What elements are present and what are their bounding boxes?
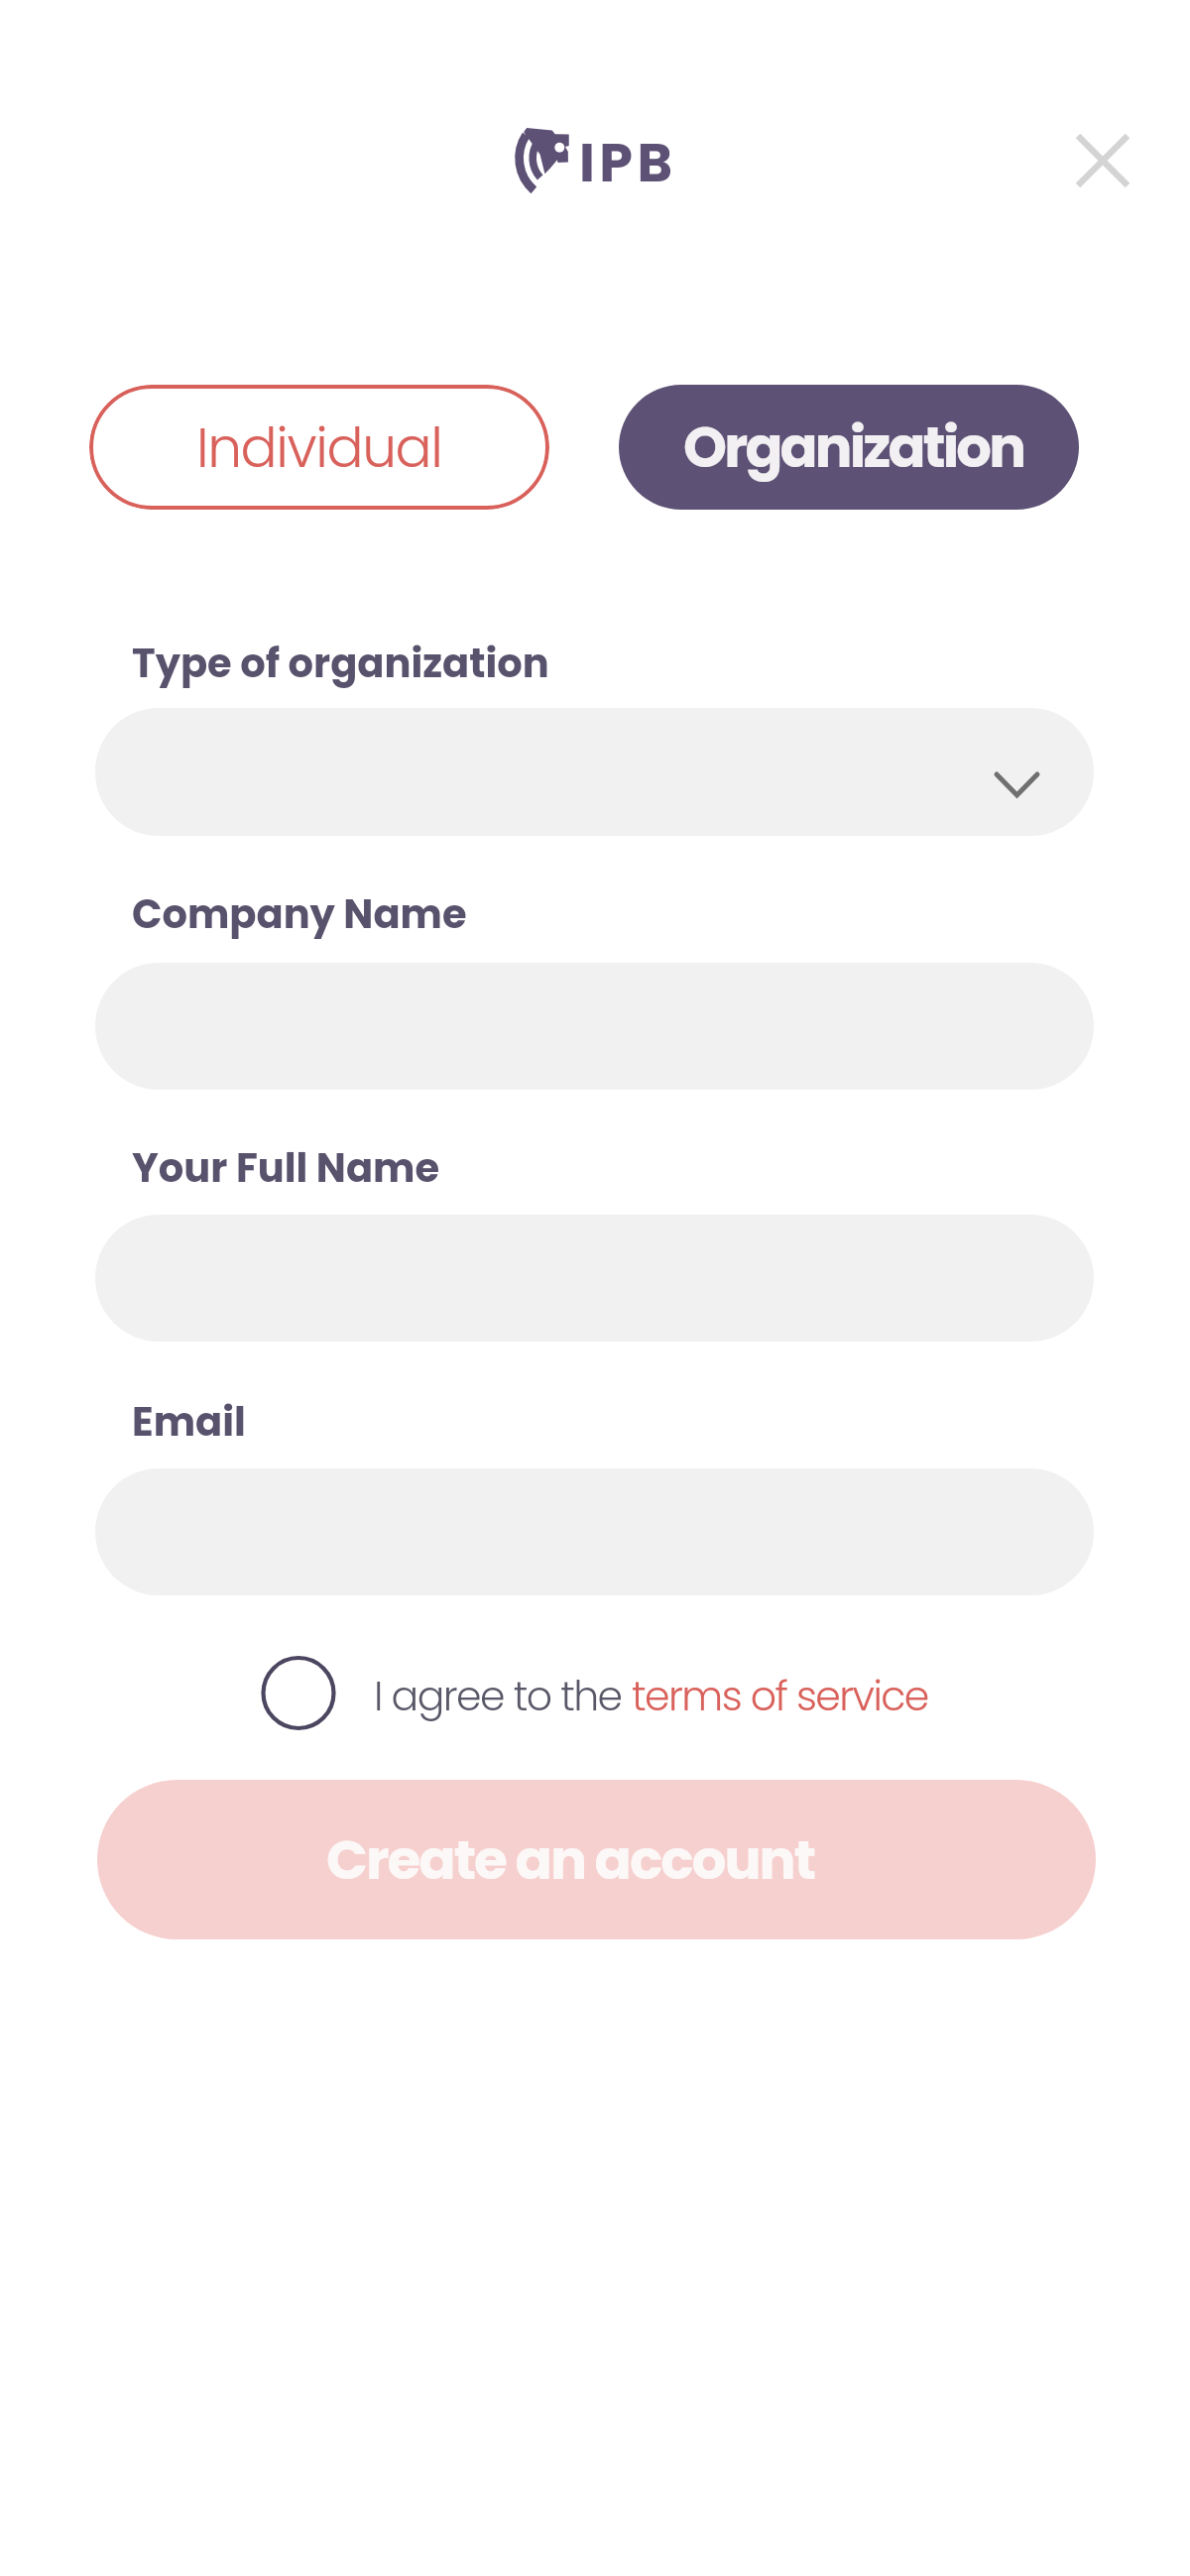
staticText: Type of organization [132, 636, 549, 691]
staticText: IPB [579, 125, 677, 200]
staticText: Create an account [326, 1821, 815, 1898]
button[interactable]: Close [1067, 125, 1138, 196]
button[interactable]: Create an account [97, 1780, 1096, 1939]
staticText: terms of service [632, 1668, 928, 1724]
staticText: I agree to the [374, 1668, 632, 1724]
button[interactable]: I agree to the [257, 1655, 928, 1736]
staticText: Organization [683, 409, 1024, 486]
staticText: Email [132, 1394, 246, 1450]
staticText: Your Full Name [132, 1140, 440, 1196]
button[interactable]: Individual [89, 385, 549, 510]
staticText: Individual [196, 410, 442, 486]
staticText: Company Name [132, 886, 467, 942]
button[interactable]: Organization [619, 385, 1079, 510]
button[interactable]: Select type of organization [95, 708, 1094, 836]
